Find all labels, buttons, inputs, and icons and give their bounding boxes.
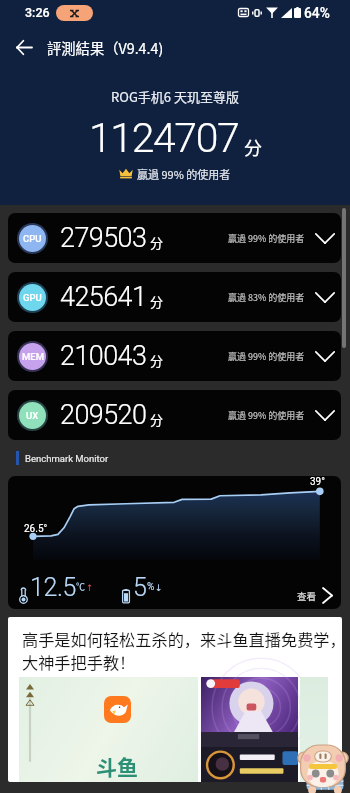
button[interactable]: 高手是如何轻松五杀的，来斗鱼直播免费学， [8, 617, 342, 782]
staticText: ↑ [86, 583, 94, 593]
staticText: 1124707 [89, 114, 239, 162]
staticText: 贏過 99% 的使用者 [228, 232, 305, 245]
staticText: 高手是如何轻松五杀的，来斗鱼直播免费学， [22, 627, 342, 650]
staticText: 分 [150, 351, 164, 370]
button[interactable]: UX [8, 390, 341, 440]
staticText: GPU [23, 292, 42, 303]
staticText: Benchmark Monitor [25, 453, 109, 464]
staticText: 斗鱼 [96, 751, 138, 781]
staticText: CPU [23, 233, 42, 244]
staticText: ↓ [155, 583, 163, 593]
staticText: 12.5 [30, 573, 76, 602]
button[interactable]: MEM [8, 331, 341, 381]
staticText: UX [26, 410, 39, 421]
button[interactable]: CPU [8, 213, 341, 263]
staticText: 64% [304, 5, 330, 21]
staticText: MEM [22, 351, 44, 362]
button[interactable]: GPU [8, 272, 341, 322]
staticText: ℃ [76, 580, 86, 593]
staticText: 贏過 83% 的使用者 [228, 291, 305, 304]
staticText: 分 [150, 233, 164, 252]
staticText: 3:26 [25, 5, 50, 20]
staticText: 分 [150, 292, 164, 311]
staticText: 5 [133, 573, 147, 602]
staticText: 贏過 99% 的使用者 [228, 409, 305, 422]
staticText: 大神手把手教！ [22, 650, 136, 673]
button[interactable]: Back [0, 24, 47, 70]
staticText: 26.5° [24, 523, 48, 535]
staticText: 209520 [60, 399, 147, 431]
staticText: 210043 [60, 340, 147, 372]
staticText: ROG手机6 天玑至尊版 [0, 87, 350, 106]
staticText: 279503 [60, 222, 147, 254]
staticText: 評測結果（V9.4.4) [47, 37, 164, 58]
staticText: 查看 [297, 589, 317, 603]
staticText: 贏過 99% 的使用者 [137, 166, 231, 180]
staticText: 425641 [60, 281, 147, 313]
staticText: 39° [310, 476, 325, 488]
staticText: 分 [150, 410, 164, 429]
button[interactable]: 查看 [297, 587, 333, 609]
staticText: % [147, 581, 155, 593]
staticText: 贏過 99% 的使用者 [228, 350, 305, 363]
staticText: 分 [244, 134, 262, 160]
